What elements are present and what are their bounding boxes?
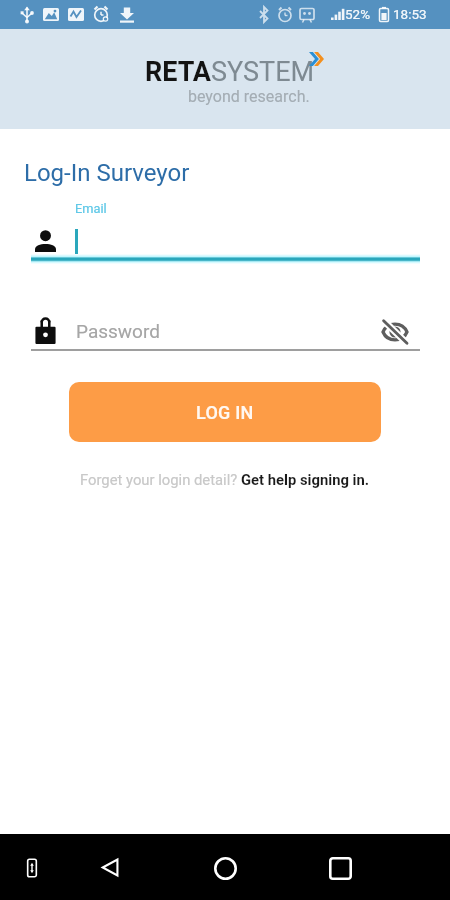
staticText: Password bbox=[76, 320, 160, 342]
button[interactable]: Back bbox=[86, 845, 134, 891]
button[interactable]: Rotate screen bbox=[8, 845, 56, 891]
staticText: Forget your login detail? bbox=[80, 471, 241, 488]
button[interactable]: Home bbox=[201, 845, 249, 891]
button[interactable]: Recents bbox=[316, 845, 364, 891]
staticText: Email bbox=[75, 201, 107, 216]
staticText: RETA bbox=[145, 56, 211, 88]
staticText: Log-In Surveyor bbox=[24, 159, 190, 187]
staticText: SYSTEM bbox=[211, 56, 315, 88]
button[interactable]: LOG IN bbox=[69, 382, 381, 442]
staticText: 18:53 bbox=[393, 6, 427, 22]
button[interactable]: Get help signing in. bbox=[241, 471, 370, 488]
staticText: 52% bbox=[345, 6, 371, 22]
button[interactable]: Show password bbox=[379, 318, 411, 346]
staticText: beyond research. bbox=[188, 87, 310, 106]
staticText: LOG IN bbox=[196, 402, 254, 423]
